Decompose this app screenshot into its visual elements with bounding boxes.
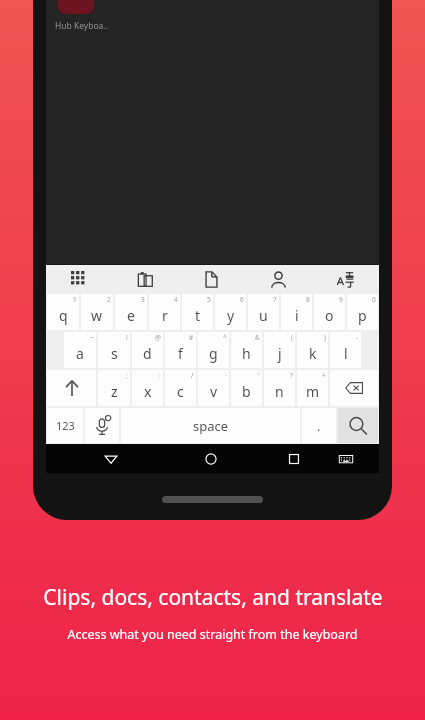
- staticText: e: [127, 306, 135, 325]
- staticText: h: [242, 344, 251, 363]
- staticText: i: [295, 306, 299, 325]
- staticText: p: [358, 306, 367, 325]
- staticText: ;: [126, 371, 128, 380]
- button[interactable]: ?: [264, 370, 295, 406]
- button[interactable]: 3: [115, 294, 147, 330]
- button[interactable]: Recents: [281, 446, 307, 472]
- button[interactable]: 4: [149, 294, 180, 330]
- staticText: l: [344, 344, 348, 363]
- staticText: f: [178, 344, 183, 363]
- staticText: ': [258, 371, 260, 380]
- button[interactable]: Home: [198, 446, 224, 472]
- staticText: 0: [372, 295, 376, 304]
- button[interactable]: Contacts: [245, 265, 312, 293]
- button[interactable]: &: [231, 332, 262, 368]
- staticText: q: [59, 306, 68, 325]
- button[interactable]: Translate: [312, 265, 379, 293]
- staticText: j: [278, 344, 282, 363]
- staticText: 6: [240, 295, 244, 304]
- staticText: 8: [306, 295, 310, 304]
- button[interactable]: /: [165, 370, 196, 406]
- button[interactable]: Clipboard: [112, 265, 178, 293]
- button[interactable]: @: [132, 332, 163, 368]
- staticText: @: [155, 333, 161, 342]
- button[interactable]: -: [330, 332, 361, 368]
- staticText: 7: [273, 295, 277, 304]
- button[interactable]: 8: [281, 294, 312, 330]
- button[interactable]: (: [264, 332, 295, 368]
- staticText: Hub Keyboa..: [55, 20, 108, 32]
- button[interactable]: Back: [98, 446, 124, 472]
- staticText: b: [242, 382, 251, 401]
- button[interactable]: ;: [98, 370, 130, 406]
- button[interactable]: #: [165, 332, 196, 368]
- button[interactable]: !: [98, 332, 130, 368]
- staticText: ?: [290, 371, 293, 380]
- staticText: n: [275, 382, 284, 401]
- staticText: #: [189, 333, 194, 342]
- button[interactable]: 7: [248, 294, 279, 330]
- button[interactable]: Apps: [46, 265, 112, 293]
- button[interactable]: ^: [198, 332, 229, 368]
- button[interactable]: Backspace: [330, 370, 378, 406]
- button[interactable]: space: [121, 408, 300, 443]
- staticText: a: [76, 344, 84, 363]
- staticText: 2: [107, 295, 111, 304]
- button[interactable]: Switch keyboard: [333, 446, 359, 472]
- staticText: 1: [73, 295, 77, 304]
- button[interactable]: 2: [81, 294, 113, 330]
- button[interactable]: period: [302, 408, 336, 443]
- staticText: Clips, docs, contacts, and translate: [43, 583, 383, 612]
- button[interactable]: 9: [314, 294, 345, 330]
- staticText: Access what you need straight from the k…: [67, 626, 358, 643]
- staticText: k: [309, 344, 317, 363]
- staticText: g: [209, 344, 218, 363]
- button[interactable]: ': [231, 370, 262, 406]
- staticText: 9: [339, 295, 343, 304]
- staticText: m: [306, 382, 320, 401]
- staticText: s: [111, 344, 118, 363]
- button[interactable]: :: [132, 370, 163, 406]
- button[interactable]: Documents: [178, 265, 245, 293]
- button[interactable]: 0: [347, 294, 378, 330]
- staticText: /: [191, 371, 194, 380]
- button[interactable]: Voice input: [85, 408, 119, 443]
- staticText: x: [144, 382, 152, 401]
- button[interactable]: [58, 0, 94, 14]
- staticText: !: [126, 333, 128, 342]
- staticText: r: [162, 306, 168, 325]
- staticText: o: [325, 306, 334, 325]
- staticText: 3: [141, 295, 145, 304]
- staticText: 5: [207, 295, 211, 304]
- button[interactable]: Shift: [47, 370, 96, 406]
- button[interactable]: 1: [47, 294, 79, 330]
- staticText: d: [143, 344, 152, 363]
- staticText: w: [91, 306, 103, 325]
- button[interactable]: 123: [47, 408, 83, 443]
- staticText: (: [291, 333, 293, 342]
- button[interactable]: 5: [182, 294, 213, 330]
- staticText: 4: [174, 295, 178, 304]
- staticText: &: [255, 333, 260, 342]
- button[interactable]: ·: [198, 370, 229, 406]
- staticText: space: [193, 417, 229, 435]
- staticText: t: [195, 306, 201, 325]
- staticText: -: [356, 333, 359, 342]
- button[interactable]: +: [297, 370, 328, 406]
- staticText: 123: [56, 418, 75, 433]
- staticText: ^: [223, 333, 227, 342]
- staticText: v: [210, 382, 218, 401]
- staticText: :: [159, 371, 161, 380]
- staticText: c: [177, 382, 184, 401]
- staticText: ): [324, 333, 326, 342]
- staticText: ·: [225, 371, 227, 380]
- button[interactable]: ~: [64, 332, 96, 368]
- button[interactable]: 6: [215, 294, 246, 330]
- button[interactable]: ): [297, 332, 328, 368]
- staticText: y: [227, 306, 235, 325]
- button[interactable]: Search: [338, 408, 378, 443]
- staticText: ~: [90, 333, 94, 342]
- staticText: u: [259, 306, 268, 325]
- staticText: z: [111, 382, 118, 401]
- staticText: +: [322, 371, 326, 380]
